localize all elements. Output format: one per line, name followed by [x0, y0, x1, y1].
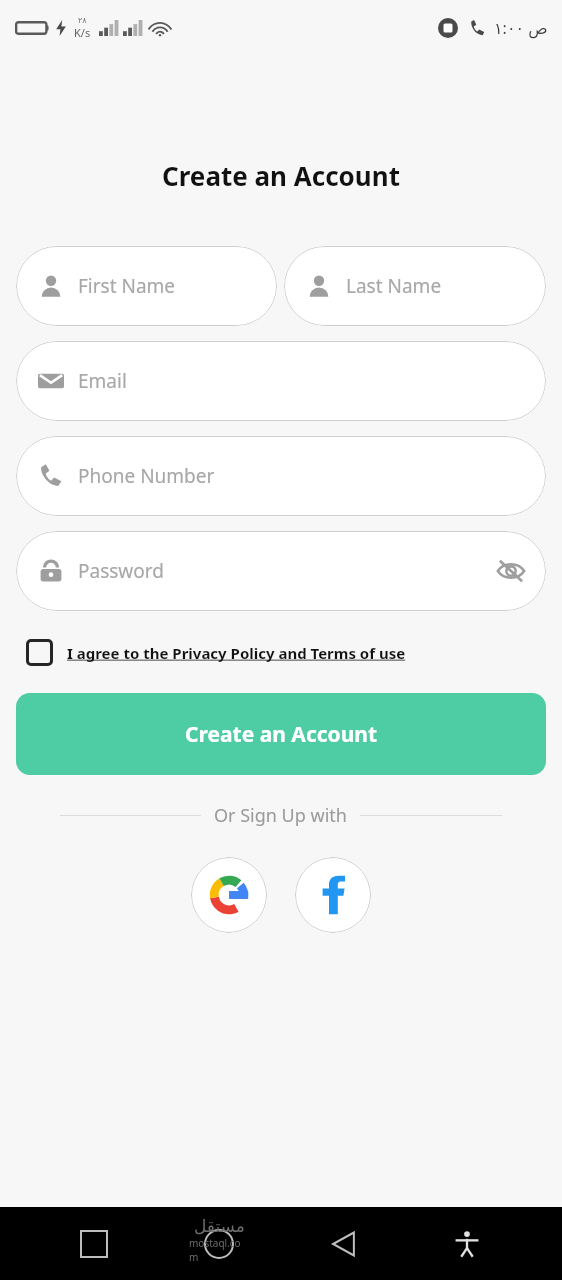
button[interactable]: Sign up with Google [191, 857, 267, 933]
staticText: Create an Account [0, 158, 562, 193]
staticText: I agree to the Privacy Policy and Terms … [67, 643, 406, 663]
staticText: Email [78, 368, 526, 394]
button[interactable]: Last Name [284, 246, 546, 326]
staticText: Phone Number [78, 463, 526, 489]
button[interactable]: Phone Number [16, 436, 546, 516]
button[interactable]: First Name [16, 246, 277, 326]
button[interactable]: Back [316, 1216, 372, 1272]
button[interactable]: Home [189, 1214, 249, 1274]
staticText: مستقل [194, 1216, 245, 1236]
staticText: First Name [78, 273, 257, 299]
staticText: K/s [74, 25, 91, 40]
staticText: mostaql.com [189, 1236, 249, 1264]
button[interactable]: I agree to the Privacy Policy and Terms … [22, 633, 410, 672]
button[interactable]: Sign up with Facebook [295, 857, 371, 933]
other: Show password [496, 556, 526, 586]
button[interactable]: Email [16, 341, 546, 421]
button[interactable]: Password [16, 531, 546, 611]
staticText: ص ١:٠٠ [494, 17, 548, 39]
button[interactable]: Accessibility [439, 1216, 495, 1272]
staticText: Password [78, 558, 496, 584]
button[interactable]: Recents [66, 1216, 122, 1272]
button[interactable]: Create an Account [16, 693, 546, 775]
staticText: Or Sign Up with [214, 803, 347, 828]
staticText: Last Name [346, 273, 526, 299]
staticText: Create an Account [185, 720, 378, 749]
staticText: ٢٨ [78, 16, 87, 25]
